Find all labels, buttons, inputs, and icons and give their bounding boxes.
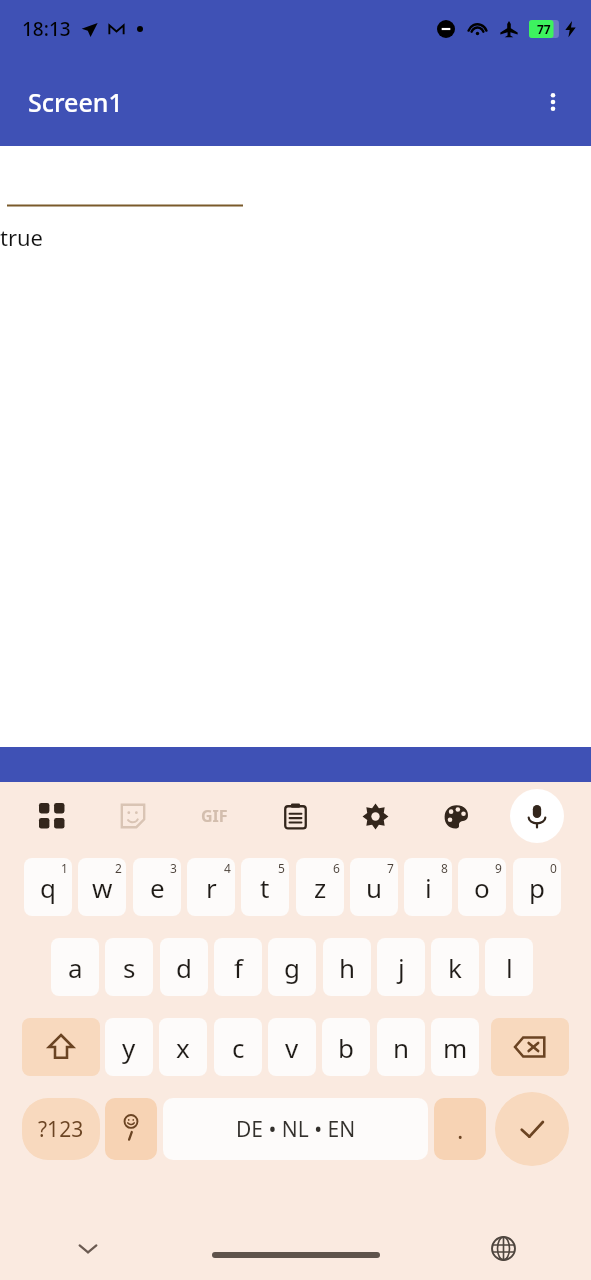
staticText: p <box>529 870 545 905</box>
staticText: 0 <box>550 860 557 876</box>
button[interactable]: Keyboard modes <box>25 789 79 843</box>
button[interactable]: j <box>377 938 425 996</box>
staticText: j <box>398 950 405 985</box>
button[interactable]: z <box>296 858 344 916</box>
staticText: 5 <box>278 860 285 876</box>
button[interactable]: y <box>105 1018 153 1076</box>
button[interactable]: l <box>485 938 533 996</box>
staticText: u <box>366 870 383 905</box>
button[interactable]: Shift <box>22 1018 100 1076</box>
button[interactable]: Clipboard <box>268 789 322 843</box>
staticText: GIF <box>201 805 228 827</box>
button[interactable]: Period <box>434 1098 486 1160</box>
staticText: t <box>260 870 270 905</box>
staticText: Screen1 <box>28 85 123 119</box>
button[interactable]: f <box>214 938 262 996</box>
button[interactable]: GIF <box>187 789 241 843</box>
staticText: m <box>443 1030 468 1065</box>
button[interactable]: Change language <box>477 1222 529 1274</box>
button[interactable]: n <box>377 1018 425 1076</box>
button[interactable]: s <box>105 938 153 996</box>
staticText: z <box>314 870 327 905</box>
button[interactable]: Symbols <box>22 1098 100 1160</box>
button[interactable]: m <box>431 1018 479 1076</box>
staticText: 8 <box>441 860 448 876</box>
button[interactable]: a <box>51 938 99 996</box>
button[interactable]: k <box>431 938 479 996</box>
staticText: h <box>339 950 356 985</box>
button[interactable]: x <box>159 1018 207 1076</box>
button[interactable]: w <box>78 858 126 916</box>
staticText: s <box>123 950 136 985</box>
button[interactable]: i <box>404 858 452 916</box>
button[interactable]: Backspace <box>491 1018 569 1076</box>
staticText: i <box>425 870 432 905</box>
button[interactable]: d <box>160 938 208 996</box>
staticText: n <box>393 1030 410 1065</box>
staticText: 3 <box>170 860 177 876</box>
button[interactable]: o <box>458 858 506 916</box>
staticText: x <box>176 1030 190 1065</box>
staticText: 9 <box>495 860 502 876</box>
staticText: 2 <box>115 860 122 876</box>
button[interactable]: More options <box>529 78 577 126</box>
button[interactable]: Voice input <box>510 789 564 843</box>
button[interactable]: t <box>241 858 289 916</box>
staticText: y <box>122 1030 136 1065</box>
button[interactable]: Emoji and comma <box>105 1098 157 1160</box>
button[interactable]: v <box>268 1018 316 1076</box>
staticText: b <box>338 1030 354 1065</box>
button[interactable]: r <box>187 858 235 916</box>
button[interactable]: u <box>350 858 398 916</box>
button[interactable]: e <box>133 858 181 916</box>
button[interactable]: g <box>268 938 316 996</box>
staticText: 18:13 <box>22 16 71 42</box>
staticText: true <box>0 222 44 252</box>
button[interactable]: b <box>322 1018 370 1076</box>
staticText: d <box>176 950 192 985</box>
button[interactable]: h <box>323 938 371 996</box>
staticText: 77 <box>537 21 551 37</box>
staticText: a <box>68 950 83 985</box>
staticText: f <box>234 950 243 985</box>
button[interactable]: p <box>513 858 561 916</box>
staticText: ?123 <box>38 1115 84 1144</box>
staticText: 6 <box>333 860 340 876</box>
staticText: 1 <box>61 860 68 876</box>
staticText: e <box>150 870 165 905</box>
button[interactable]: q <box>24 858 72 916</box>
staticText: . <box>457 1113 464 1146</box>
staticText: o <box>474 870 490 905</box>
button[interactable]: c <box>214 1018 262 1076</box>
staticText: v <box>285 1030 299 1065</box>
staticText: DE • NL • EN <box>236 1115 356 1144</box>
staticText: r <box>206 870 217 905</box>
button[interactable]: Hide keyboard <box>62 1222 114 1274</box>
staticText: c <box>232 1030 245 1065</box>
button[interactable]: Themes <box>429 789 483 843</box>
staticText: 4 <box>224 860 231 876</box>
staticText: k <box>448 950 462 985</box>
staticText: w <box>92 870 113 905</box>
button[interactable]: Settings <box>348 789 402 843</box>
staticText: q <box>40 870 56 905</box>
staticText: g <box>284 950 300 985</box>
button[interactable]: Stickers <box>106 789 160 843</box>
staticText: l <box>506 950 513 985</box>
button[interactable]: Space <box>163 1098 428 1160</box>
button[interactable]: Enter <box>495 1092 569 1166</box>
staticText: 7 <box>387 860 394 876</box>
